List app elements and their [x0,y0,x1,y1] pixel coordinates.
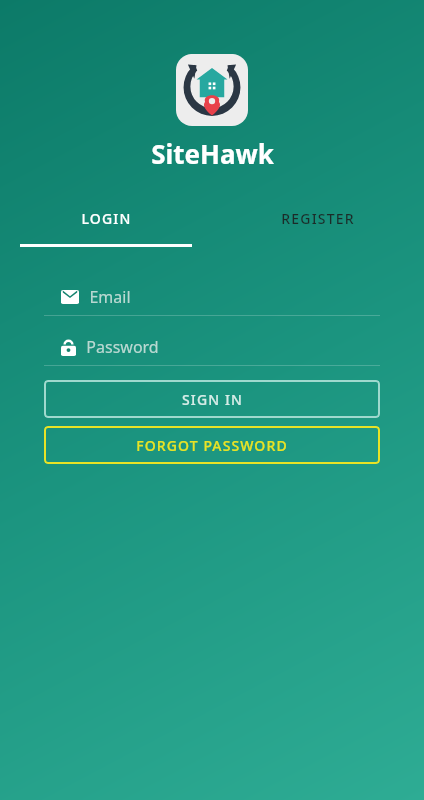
button[interactable]: FORGOT PASSWORD [44,426,380,464]
staticText: SiteHawk [151,136,274,171]
button[interactable]: SIGN IN [44,380,380,418]
button[interactable]: LOGIN [0,197,212,247]
other: Email [61,290,79,304]
staticText: LOGIN [81,209,132,228]
staticText: FORGOT PASSWORD [136,436,288,455]
other: Password [61,339,76,356]
staticText: Password [86,336,159,358]
button[interactable]: REGISTER [212,197,424,247]
staticText: Email [89,286,131,308]
staticText: SIGN IN [182,390,243,409]
button[interactable]: Email [44,279,380,316]
button[interactable]: Password [44,329,380,366]
other: SiteHawk logo [176,54,248,126]
staticText: REGISTER [281,209,355,228]
